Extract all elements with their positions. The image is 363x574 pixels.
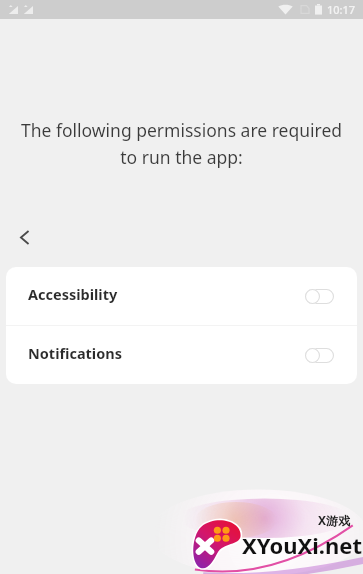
staticText: X游戏 [318, 512, 351, 528]
staticText: Accessibility [28, 284, 118, 304]
button[interactable]: Back [10, 223, 38, 251]
button[interactable]: Toggle Accessibility [305, 289, 334, 304]
button[interactable]: Accessibility [6, 267, 357, 325]
staticText: XYouXi.net [242, 530, 362, 560]
button[interactable]: Notifications [6, 326, 357, 384]
staticText: Notifications [28, 343, 122, 363]
staticText: The following permissions are required t… [10, 118, 353, 169]
staticText: 10:17 [327, 2, 356, 17]
button[interactable]: Toggle Notifications [305, 348, 334, 363]
